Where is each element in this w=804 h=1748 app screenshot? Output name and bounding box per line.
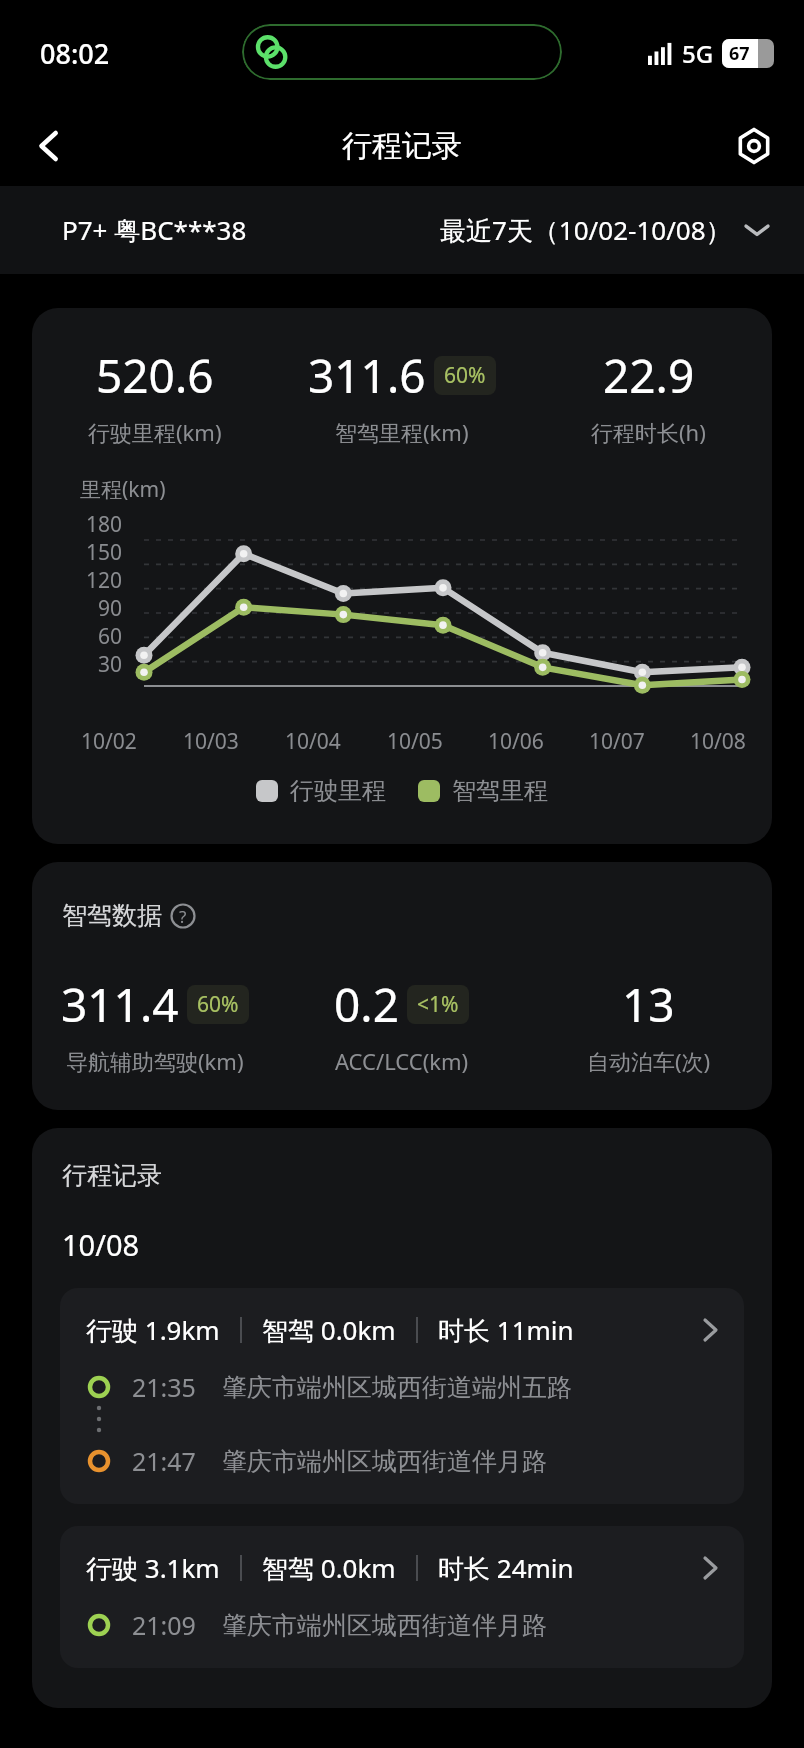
staticText: 13 <box>622 973 675 1036</box>
staticText: 行程时长(h) <box>591 417 706 447</box>
staticText: 30 <box>97 650 122 678</box>
staticText: 90 <box>97 594 122 622</box>
staticText: 智驾 0.0km <box>262 1312 396 1348</box>
staticText: 10/04 <box>285 727 341 756</box>
staticText: 行程记录 <box>62 1160 162 1191</box>
staticText: 67 <box>729 41 750 66</box>
staticText: 行驶里程 <box>290 776 386 806</box>
staticText: 21:47 <box>132 1444 196 1478</box>
staticText: 60% <box>197 990 239 1019</box>
staticText: 180 <box>85 510 122 538</box>
staticText: 10/07 <box>589 727 645 756</box>
staticText: 行程记录 <box>342 127 462 165</box>
staticText: 时长 11min <box>438 1312 574 1348</box>
staticText: 60% <box>444 361 486 390</box>
staticText: 智驾里程 <box>452 776 548 806</box>
staticText: 行驶 1.9km <box>86 1312 220 1348</box>
button[interactable]: Help <box>170 903 196 929</box>
staticText: 10/06 <box>488 727 544 756</box>
staticText: 时长 24min <box>438 1550 574 1586</box>
staticText: 5G <box>682 37 714 70</box>
staticText: ACC/LCC(km) <box>335 1046 469 1076</box>
button[interactable]: Back <box>22 118 78 174</box>
staticText: 智驾里程(km) <box>335 417 469 447</box>
staticText: 21:35 <box>132 1370 196 1404</box>
button[interactable]: 行驶 1.9km <box>60 1288 744 1504</box>
button[interactable]: Settings <box>726 118 782 174</box>
staticText: 智驾数据 <box>62 900 162 931</box>
staticText: 22.9 <box>603 344 695 407</box>
staticText: 里程(km) <box>80 475 166 504</box>
staticText: 08:02 <box>40 35 110 72</box>
staticText: 10/08 <box>62 1225 140 1264</box>
button[interactable]: 行驶 3.1km <box>60 1526 744 1668</box>
staticText: 150 <box>85 538 122 566</box>
staticText: 60 <box>97 622 122 650</box>
staticText: 120 <box>85 566 122 594</box>
staticText: 10/05 <box>387 727 443 756</box>
staticText: 311.4 <box>61 973 179 1036</box>
staticText: 最近7天（10/02-10/08） <box>440 212 732 248</box>
staticText: 肇庆市端州区城西街道伴月路 <box>222 1446 547 1477</box>
staticText: 行驶 3.1km <box>86 1550 220 1586</box>
button[interactable]: P7+ 粤BC***38 <box>0 186 804 274</box>
staticText: 10/02 <box>81 727 137 756</box>
staticText: 导航辅助驾驶(km) <box>66 1046 244 1076</box>
staticText: 0.2 <box>334 973 399 1036</box>
staticText: 智驾 0.0km <box>262 1550 396 1586</box>
staticText: ? <box>179 905 187 928</box>
staticText: 肇庆市端州区城西街道伴月路 <box>222 1610 547 1641</box>
staticText: 10/08 <box>690 727 746 756</box>
staticText: 10/03 <box>183 727 239 756</box>
staticText: 自动泊车(次) <box>587 1046 711 1076</box>
staticText: 311.6 <box>308 344 426 407</box>
staticText: 21:09 <box>132 1608 196 1642</box>
staticText: P7+ 粤BC***38 <box>62 212 247 248</box>
staticText: 行驶里程(km) <box>88 417 222 447</box>
staticText: 520.6 <box>96 344 214 407</box>
staticText: <1% <box>417 990 459 1019</box>
staticText: 肇庆市端州区城西街道端州五路 <box>222 1372 572 1403</box>
